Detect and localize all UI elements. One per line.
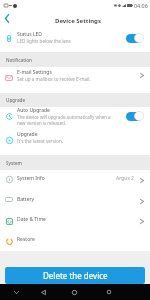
button[interactable]: System Info <box>0 170 150 192</box>
button[interactable]: E-mail Settings <box>0 66 150 93</box>
button[interactable]: Recent apps <box>102 285 116 299</box>
staticText: 04:06 <box>134 2 148 9</box>
staticText: Auto Upgrade <box>17 107 50 114</box>
staticText: E-mail Settings <box>17 69 52 76</box>
staticText: Upgrade <box>17 131 38 138</box>
staticText: Delete the device <box>43 270 108 281</box>
button[interactable]: Back <box>36 285 50 299</box>
staticText: Restore <box>17 236 35 243</box>
button[interactable]: Auto Upgrade <box>0 107 150 128</box>
staticText: LED lights below the lens <box>17 38 71 44</box>
staticText: Device Settings <box>55 17 101 25</box>
button[interactable]: Home <box>67 285 81 299</box>
button[interactable]: Hide keyboard <box>9 285 23 299</box>
button[interactable]: Delete the device <box>5 267 145 284</box>
staticText: Date & Time <box>17 216 46 223</box>
button[interactable]: Upgrade <box>0 128 150 156</box>
staticText: Argus 2 <box>116 175 134 182</box>
staticText: System Info <box>17 175 45 182</box>
button[interactable]: Toggle <box>126 33 144 43</box>
button[interactable]: Toggle <box>126 111 144 121</box>
staticText: Upgrade <box>6 97 26 103</box>
button[interactable]: Status LED <box>0 26 150 52</box>
staticText: new version is released. <box>17 120 67 126</box>
button[interactable]: Date & Time <box>0 212 150 233</box>
staticText: It's the latest version. <box>17 138 64 144</box>
button[interactable]: Restore <box>0 233 150 251</box>
staticText: Status LED <box>17 31 42 38</box>
staticText: The device will upgrade automatically wh… <box>17 114 111 120</box>
staticText: Notification <box>6 57 32 63</box>
staticText: Battery <box>17 196 35 203</box>
staticText: Set up a mailbox to receive E-mail. <box>17 76 91 82</box>
staticText: System <box>6 160 22 166</box>
button[interactable]: Back <box>0 11 14 26</box>
button[interactable]: Battery <box>0 192 150 213</box>
